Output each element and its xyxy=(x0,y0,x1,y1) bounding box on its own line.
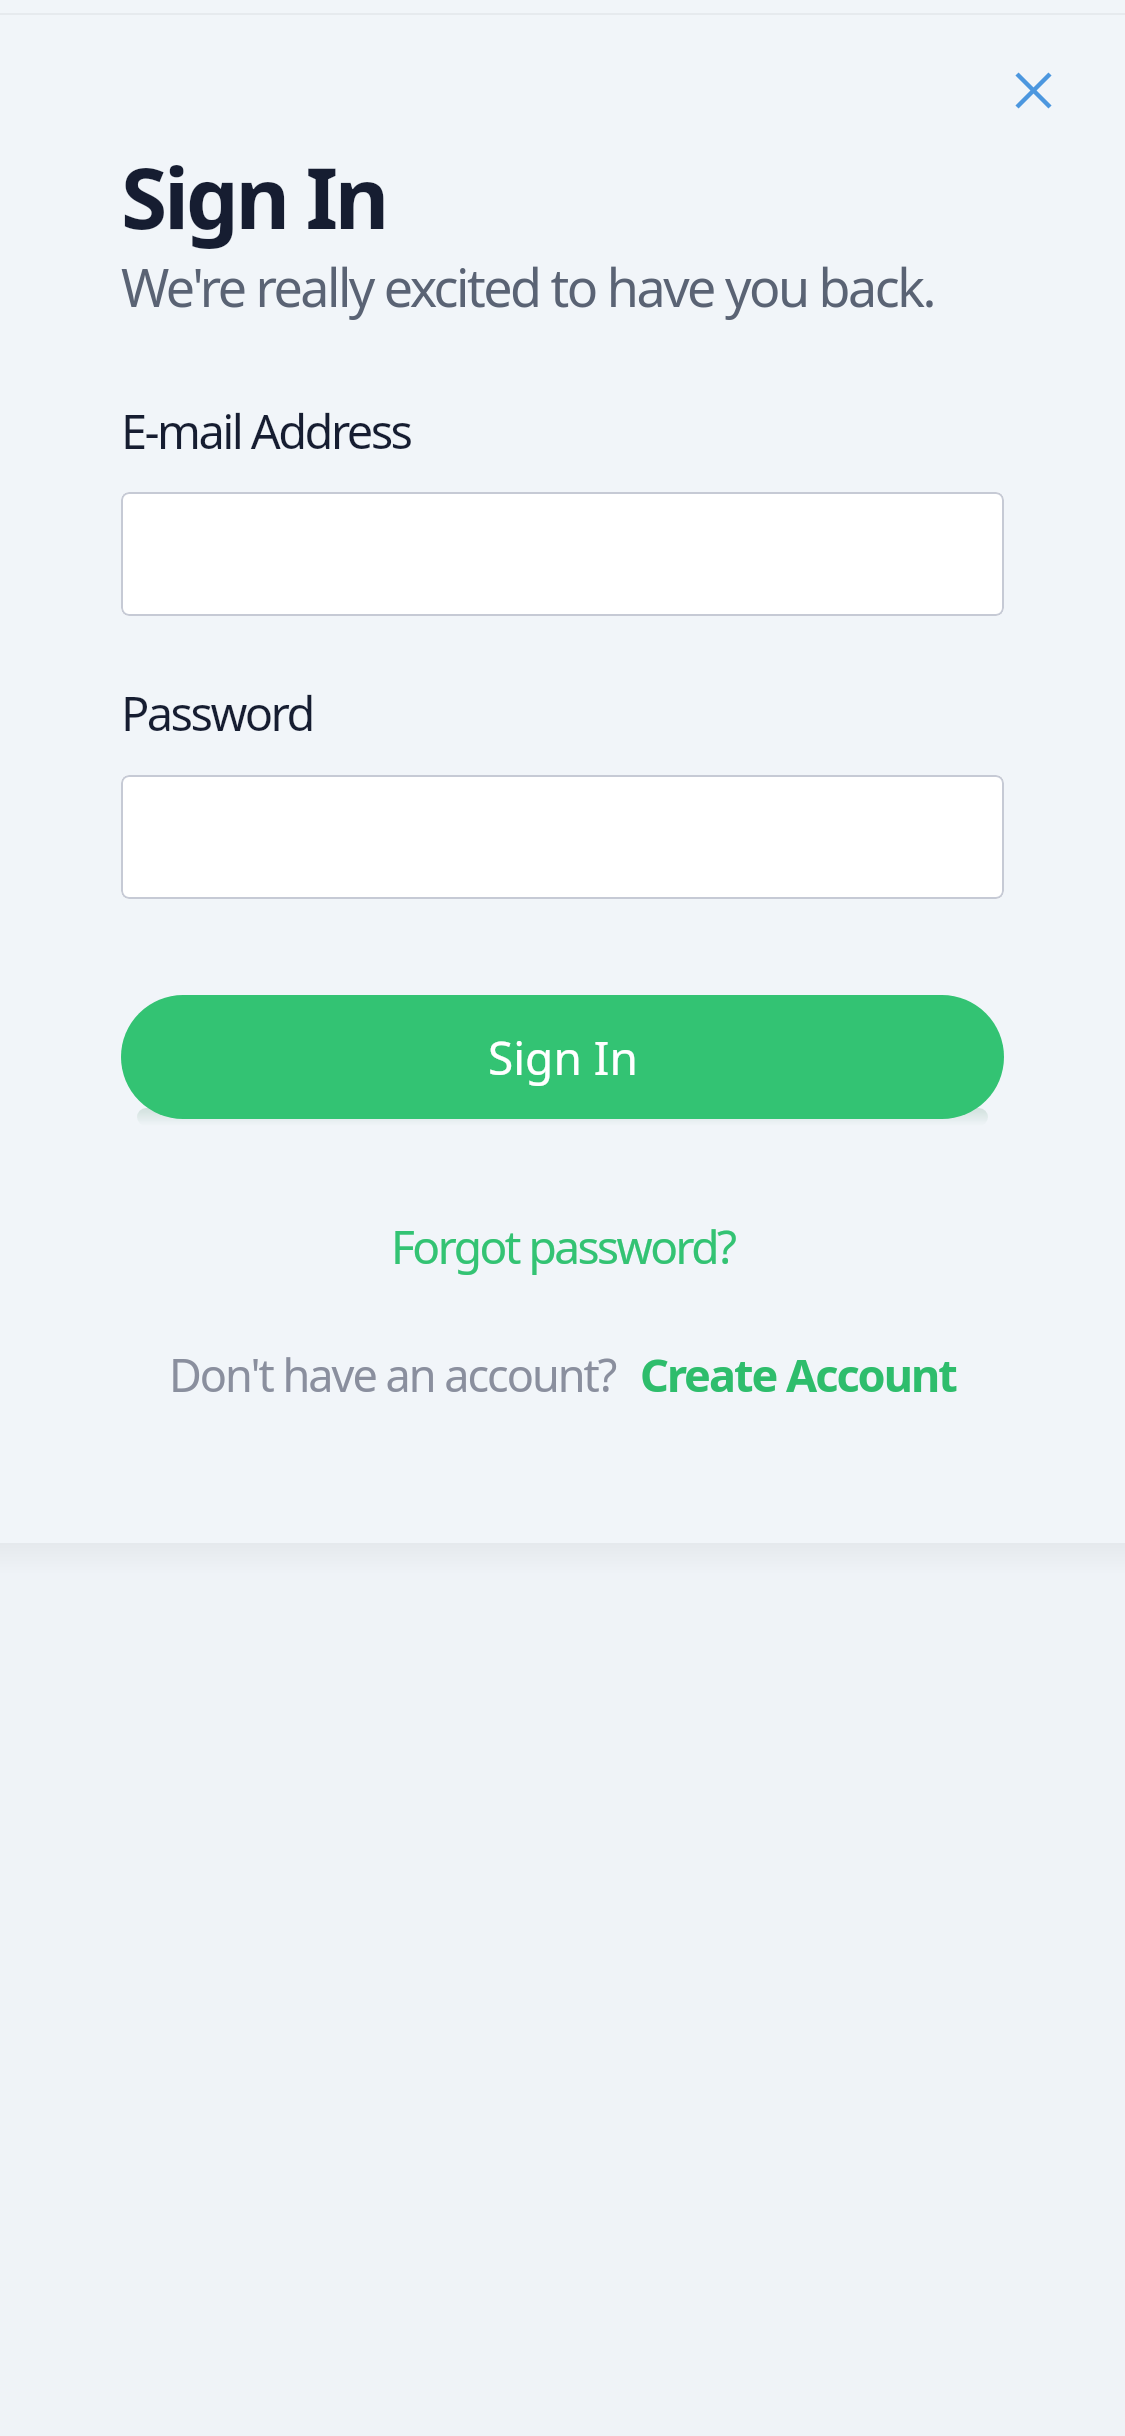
staticText: Sign In xyxy=(121,139,387,253)
button[interactable] xyxy=(995,52,1071,128)
staticText: Password xyxy=(121,681,313,745)
button[interactable] xyxy=(121,775,1004,899)
button[interactable]: Sign In xyxy=(121,995,1004,1119)
button[interactable]: Forgot password? xyxy=(391,1215,735,1278)
button[interactable]: Create Account xyxy=(640,1344,956,1405)
staticText: We're really excited to have you back. xyxy=(121,251,934,322)
staticText: Sign In xyxy=(488,1026,638,1089)
staticText: E-mail Address xyxy=(121,399,411,463)
button[interactable] xyxy=(121,492,1004,616)
staticText: Don't have an account? xyxy=(169,1344,616,1405)
